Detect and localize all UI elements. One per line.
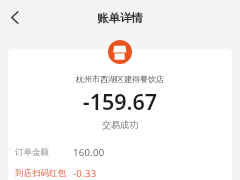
staticText: -159.67 — [0, 87, 240, 116]
button[interactable]: 到店扫码红包 — [8, 167, 232, 180]
button[interactable]: Merchant — [108, 40, 132, 64]
staticText: 交易成功 — [0, 119, 240, 130]
staticText: 账单详情 — [0, 11, 240, 25]
button[interactable]: Back — [4, 6, 26, 28]
staticText: -0.33 — [73, 167, 97, 180]
staticText: 160.00 — [73, 146, 105, 159]
staticText: 订单金额 — [15, 147, 49, 158]
staticText: 杭州市西湖区建得餐饮店 — [0, 74, 240, 84]
staticText: 到店扫码红包 — [15, 168, 66, 179]
button[interactable]: 订单金额 — [8, 146, 232, 159]
